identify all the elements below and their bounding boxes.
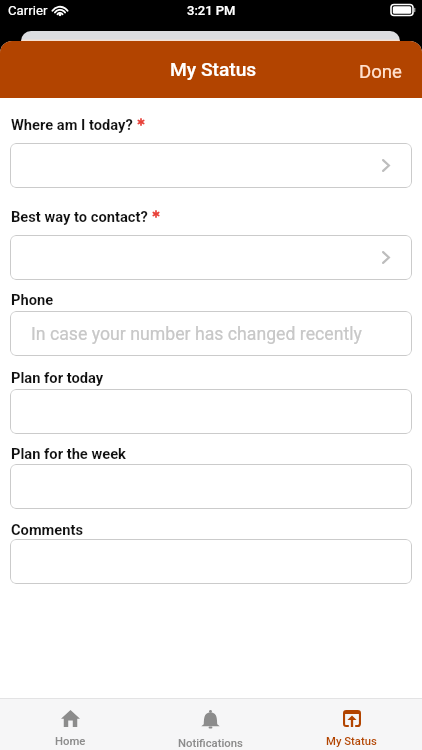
staticText: Phone <box>11 291 54 308</box>
staticText: Notifications <box>178 737 243 750</box>
button[interactable] <box>10 235 412 280</box>
staticText: My Status <box>170 58 257 81</box>
staticText: 3:21 PM <box>187 3 236 18</box>
button[interactable]: My Status <box>281 699 422 750</box>
button[interactable]: Home <box>0 699 140 750</box>
button[interactable]: Notifications <box>140 699 281 750</box>
staticText: Plan for today <box>11 369 104 386</box>
button[interactable] <box>10 539 412 584</box>
staticText: Plan for the week <box>11 445 126 462</box>
staticText: Where am I today? <box>11 116 133 133</box>
button[interactable]: Done <box>339 49 422 91</box>
staticText: Best way to contact? <box>11 208 148 225</box>
button[interactable] <box>10 389 412 434</box>
staticText: Done <box>359 61 402 83</box>
staticText: My Status <box>326 735 377 748</box>
staticText: In case your number has changed recently <box>31 324 362 345</box>
button[interactable]: In case your number has changed recently <box>10 311 412 356</box>
staticText: Carrier <box>8 3 48 18</box>
button[interactable] <box>10 143 412 188</box>
staticText: Comments <box>11 521 84 538</box>
button[interactable] <box>10 464 412 509</box>
staticText: Home <box>55 735 86 748</box>
